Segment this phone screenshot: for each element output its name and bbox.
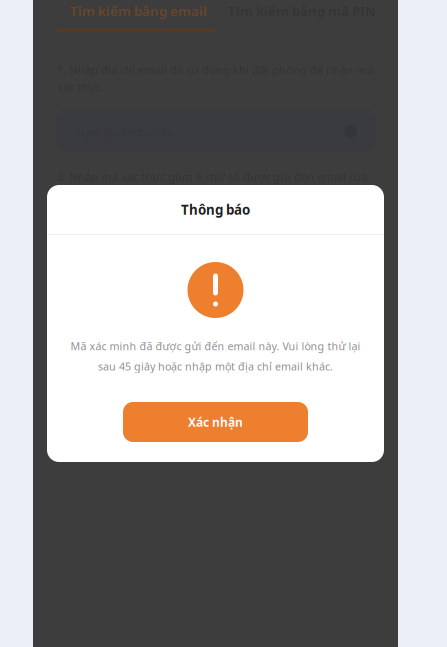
staticText: sau 45 giây hoặc nhập một địa chỉ email … bbox=[98, 359, 333, 373]
staticText: Mã xác minh đã được gửi đến email này. V… bbox=[70, 339, 360, 353]
button[interactable]: Xác nhận bbox=[123, 402, 308, 442]
staticText: Tìm kiếm bằng mã PIN bbox=[228, 2, 376, 20]
staticText: Xác nhận bbox=[188, 414, 243, 430]
staticText: Thông báo bbox=[181, 201, 250, 218]
staticText: Tìm kiếm bằng email bbox=[70, 2, 207, 20]
